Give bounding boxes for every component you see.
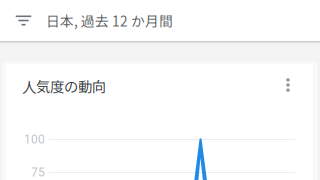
button[interactable]: More options <box>275 71 301 99</box>
staticText: 人気度の動向 <box>22 76 106 96</box>
button[interactable]: Filter <box>7 0 39 41</box>
staticText: 75 <box>31 165 45 180</box>
staticText: 100 <box>24 132 45 147</box>
staticText: 日本, 過去 12 か月間 <box>46 11 173 30</box>
